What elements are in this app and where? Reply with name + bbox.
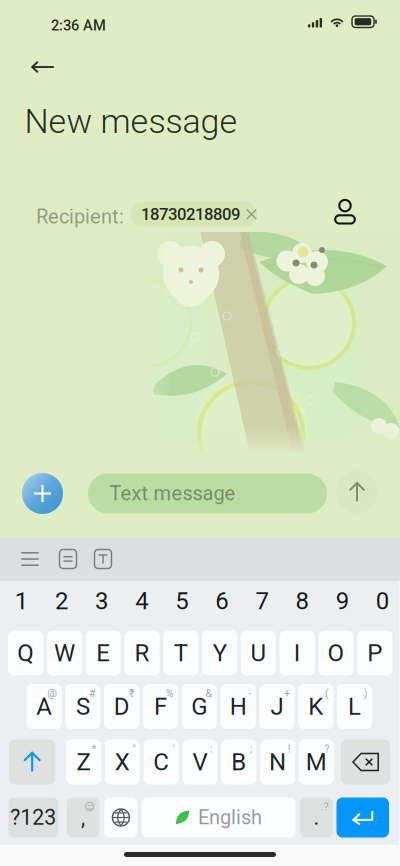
staticText: W: [54, 639, 75, 667]
button[interactable]: B: [221, 739, 256, 784]
staticText: (: [325, 687, 329, 699]
staticText: 7: [255, 587, 268, 615]
button[interactable]: English: [141, 797, 295, 837]
button[interactable]: S: [65, 684, 101, 729]
staticText: J: [270, 692, 283, 720]
staticText: U: [250, 639, 266, 667]
button[interactable]: 9: [322, 578, 362, 624]
staticText: &: [205, 687, 212, 699]
staticText: 18730218809: [141, 204, 240, 224]
staticText: :: [210, 742, 213, 755]
button[interactable]: Z: [66, 739, 101, 784]
button[interactable]: X: [105, 739, 140, 784]
button[interactable]: O: [318, 630, 354, 675]
staticText: ': [172, 742, 174, 755]
button[interactable]: F: [143, 684, 178, 729]
button[interactable]: 1: [1, 578, 41, 624]
button[interactable]: Y: [202, 630, 237, 675]
button[interactable]: V: [182, 739, 218, 784]
staticText: Text message: [109, 482, 235, 505]
button[interactable]: K: [298, 684, 333, 729]
button[interactable]: H: [220, 684, 256, 729]
staticText: H: [230, 692, 247, 720]
button[interactable]: 2: [41, 578, 81, 624]
staticText: L: [348, 692, 361, 720]
staticText: ₹: [129, 687, 135, 699]
staticText: 2:36 AM: [51, 17, 106, 34]
staticText: 9: [336, 587, 349, 615]
staticText: %: [166, 687, 174, 699]
staticText: ": [132, 742, 135, 755]
button[interactable]: E: [86, 630, 121, 675]
button[interactable]: 7: [242, 578, 282, 624]
button[interactable]: 6: [202, 578, 242, 624]
button[interactable]: Shift: [9, 739, 55, 784]
staticText: M: [306, 748, 327, 776]
button[interactable]: Backspace: [341, 739, 390, 784]
staticText: .: [313, 805, 319, 830]
staticText: C: [153, 748, 169, 776]
staticText: 5: [175, 587, 188, 615]
button[interactable]: I: [280, 630, 315, 675]
staticText: ,: [81, 805, 85, 830]
button[interactable]: U: [241, 630, 276, 675]
staticText: A: [36, 692, 52, 720]
staticText: T: [174, 639, 188, 667]
button[interactable]: C: [143, 739, 179, 784]
button[interactable]: Text style: [85, 541, 121, 577]
staticText: Recipient:: [36, 205, 124, 228]
staticText: F: [154, 692, 167, 720]
button[interactable]: Text message: [88, 473, 327, 513]
button[interactable]: 8: [282, 578, 322, 624]
button[interactable]: W: [47, 630, 82, 675]
button[interactable]: Menu: [12, 541, 48, 577]
staticText: G: [191, 692, 207, 720]
button[interactable]: Q: [8, 630, 43, 675]
button[interactable]: P: [357, 630, 392, 675]
staticText: ☺: [84, 800, 95, 813]
button[interactable]: J: [259, 684, 295, 729]
staticText: @: [47, 687, 57, 699]
button[interactable]: G: [182, 684, 217, 729]
button[interactable]: T: [163, 630, 198, 675]
button[interactable]: Add attachment: [16, 467, 68, 519]
button[interactable]: A: [26, 684, 62, 729]
button[interactable]: Enter: [336, 797, 389, 837]
staticText: V: [192, 748, 207, 776]
staticText: Q: [17, 639, 34, 667]
staticText: K: [308, 692, 323, 720]
button[interactable]: 5: [162, 578, 202, 624]
staticText: Y: [213, 639, 227, 667]
staticText: 2: [55, 587, 68, 615]
staticText: .?: [320, 800, 328, 813]
button[interactable]: Switch language: [104, 797, 137, 837]
button[interactable]: D: [104, 684, 139, 729]
staticText: 0: [376, 587, 389, 615]
staticText: N: [269, 748, 286, 776]
staticText: English: [198, 806, 262, 829]
button[interactable]: Back: [21, 45, 65, 89]
staticText: *: [92, 742, 97, 755]
button[interactable]: Clipboard: [50, 541, 86, 577]
button[interactable]: Choose contact: [325, 193, 365, 233]
staticText: #: [89, 687, 96, 699]
staticText: D: [114, 692, 130, 720]
button[interactable]: Send: [331, 466, 383, 518]
button[interactable]: ,: [67, 797, 99, 837]
staticText: ?: [324, 742, 329, 755]
button[interactable]: M: [299, 739, 334, 784]
button[interactable]: 0: [362, 578, 400, 624]
button[interactable]: L: [337, 684, 372, 729]
button[interactable]: 3: [81, 578, 122, 624]
button[interactable]: .: [300, 797, 333, 837]
button[interactable]: N: [260, 739, 295, 784]
staticText: ): [364, 687, 368, 699]
staticText: ?123: [10, 805, 56, 830]
staticText: I: [294, 639, 301, 667]
button[interactable]: R: [124, 630, 160, 675]
staticText: Z: [76, 748, 90, 776]
button[interactable]: 4: [122, 578, 162, 624]
staticText: E: [96, 639, 110, 667]
staticText: B: [231, 748, 246, 776]
button[interactable]: ?123: [8, 797, 58, 837]
